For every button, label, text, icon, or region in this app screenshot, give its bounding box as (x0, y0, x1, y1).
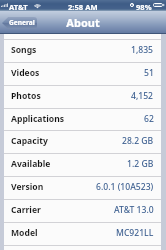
staticText: AT&T 13.0 (114, 204, 154, 216)
button[interactable]: Videos (4, 63, 161, 85)
staticText: 6.0.1 (10A523) (96, 181, 154, 193)
staticText: Applications (11, 113, 65, 125)
staticText: 4,152 (131, 90, 154, 102)
button[interactable]: General (2, 17, 37, 29)
staticText: Model (11, 227, 38, 239)
staticText: Version (11, 181, 44, 193)
button[interactable]: Version (4, 177, 161, 199)
staticText: MC921LL (116, 227, 154, 239)
button[interactable]: Model (4, 223, 161, 245)
staticText: 2:58 AM (68, 2, 98, 12)
staticText: About (66, 15, 100, 30)
staticText: 51 (144, 67, 154, 79)
staticText: Songs (11, 44, 37, 56)
staticText: Videos (11, 67, 40, 79)
staticText: 1,835 (131, 44, 154, 56)
staticText: General (9, 18, 35, 27)
staticText: AT&T (9, 2, 28, 12)
button[interactable]: Available (4, 154, 161, 176)
button[interactable]: Capacity (4, 131, 161, 153)
staticText: 62 (144, 113, 154, 125)
button[interactable]: Photos (4, 86, 161, 108)
staticText: 98% (136, 2, 152, 12)
staticText: Photos (11, 90, 41, 102)
staticText: 28.2 GB (122, 135, 154, 147)
staticText: Capacity (11, 135, 48, 147)
button[interactable]: Applications (4, 109, 161, 130)
button[interactable]: Songs (4, 40, 161, 62)
staticText: Carrier (11, 204, 41, 216)
staticText: Available (11, 158, 51, 170)
staticText: 1.2 GB (127, 158, 154, 170)
button[interactable]: Carrier (4, 200, 161, 222)
